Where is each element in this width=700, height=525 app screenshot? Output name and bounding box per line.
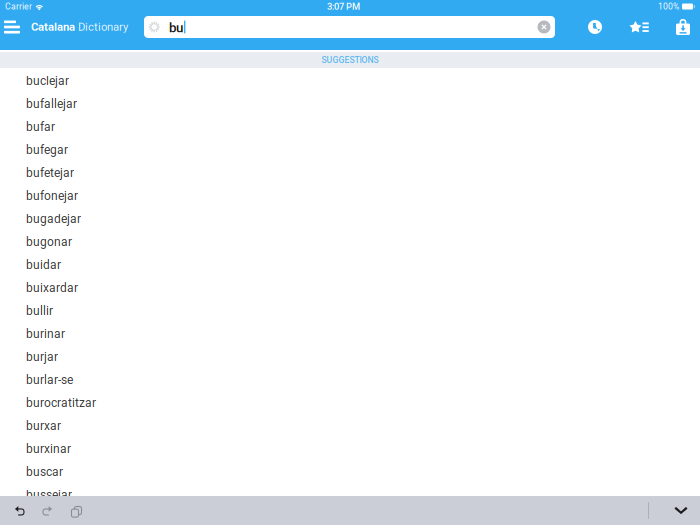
- button[interactable]: Store: [669, 14, 697, 40]
- staticText: buscar: [26, 465, 63, 479]
- button[interactable]: bussejar: [0, 482, 700, 505]
- staticText: Dictionary: [78, 20, 128, 34]
- button[interactable]: buclejar: [0, 68, 700, 91]
- staticText: burinar: [26, 327, 65, 341]
- button[interactable]: bufegar: [0, 137, 700, 160]
- button[interactable]: bugonar: [0, 229, 700, 252]
- staticText: burocratitzar: [26, 396, 96, 410]
- button[interactable]: Undo: [7, 496, 33, 525]
- button[interactable]: bufallejar: [0, 91, 700, 114]
- staticText: bufonejar: [26, 189, 78, 203]
- staticText: burjar: [26, 350, 58, 364]
- button[interactable]: butllofar: [0, 505, 700, 525]
- button[interactable]: Catalana: [31, 14, 128, 40]
- button[interactable]: bullir: [0, 298, 700, 321]
- button[interactable]: bugadejar: [0, 206, 700, 229]
- staticText: bufar: [26, 120, 55, 134]
- button[interactable]: burxar: [0, 413, 700, 436]
- button[interactable]: bufetejar: [0, 160, 700, 183]
- button[interactable]: bu: [144, 16, 555, 38]
- button[interactable]: buidar: [0, 252, 700, 275]
- staticText: bugonar: [26, 235, 72, 249]
- staticText: burxar: [26, 419, 61, 433]
- staticText: bufallejar: [26, 97, 77, 111]
- staticText: burxinar: [26, 442, 71, 456]
- staticText: bufegar: [26, 143, 68, 157]
- button[interactable]: buixardar: [0, 275, 700, 298]
- button[interactable]: Hide keyboard: [668, 496, 694, 525]
- staticText: bu: [169, 20, 183, 35]
- staticText: 3:07 PM: [327, 1, 360, 12]
- staticText: SUGGESTIONS: [321, 55, 378, 65]
- button[interactable]: Favourites: [624, 14, 654, 40]
- staticText: buixardar: [26, 281, 78, 295]
- button[interactable]: burxinar: [0, 436, 700, 459]
- staticText: Carrier: [5, 1, 32, 12]
- button[interactable]: burlar-se: [0, 367, 700, 390]
- staticText: 100%: [658, 1, 679, 12]
- staticText: bufetejar: [26, 166, 74, 180]
- button[interactable]: burocratitzar: [0, 390, 700, 413]
- staticText: butllofar: [26, 511, 72, 525]
- button[interactable]: Menu: [4, 14, 28, 40]
- staticText: bullir: [26, 304, 53, 318]
- button[interactable]: buscar: [0, 459, 700, 482]
- staticText: burlar-se: [26, 373, 73, 387]
- staticText: Catalana: [31, 20, 75, 34]
- button[interactable]: burinar: [0, 321, 700, 344]
- staticText: buclejar: [26, 74, 69, 88]
- button[interactable]: burjar: [0, 344, 700, 367]
- staticText: bugadejar: [26, 212, 81, 226]
- staticText: bussejar: [26, 488, 72, 502]
- button[interactable]: bufonejar: [0, 183, 700, 206]
- button[interactable]: Paste: [62, 496, 88, 525]
- button[interactable]: Redo: [34, 496, 60, 525]
- button[interactable]: History: [580, 14, 610, 40]
- staticText: buidar: [26, 258, 61, 272]
- button[interactable]: bufar: [0, 114, 700, 137]
